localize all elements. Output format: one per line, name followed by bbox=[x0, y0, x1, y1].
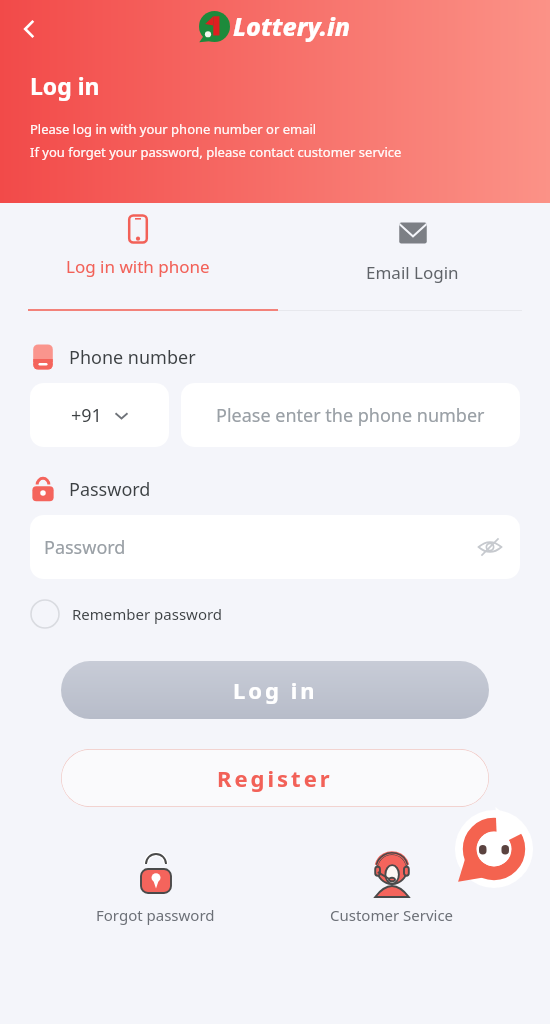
button[interactable]: +91 bbox=[30, 383, 169, 447]
staticText: If you forget your password, please cont… bbox=[30, 143, 402, 161]
button[interactable]: Log in bbox=[61, 661, 489, 719]
staticText: Remember password bbox=[72, 604, 223, 624]
staticText: Phone number bbox=[69, 345, 196, 370]
staticText: Log in bbox=[233, 675, 318, 705]
staticText: Email Login bbox=[366, 261, 459, 284]
staticText: Log in with phone bbox=[66, 255, 210, 278]
button[interactable]: Customer support chat bbox=[455, 810, 533, 888]
button[interactable]: Log in with phone bbox=[0, 203, 275, 315]
button[interactable]: Customer Service bbox=[312, 843, 472, 929]
button[interactable]: Back bbox=[6, 6, 52, 52]
staticText: Password bbox=[44, 535, 126, 560]
staticText: Please log in with your phone number or … bbox=[30, 120, 317, 138]
staticText: Register bbox=[217, 763, 333, 793]
button[interactable]: Forgot password bbox=[78, 843, 233, 929]
button[interactable]: Please enter the phone number bbox=[181, 383, 520, 447]
staticText: Customer Service bbox=[330, 905, 454, 925]
staticText: Forgot password bbox=[96, 905, 215, 925]
button[interactable]: Email Login bbox=[275, 203, 550, 315]
button[interactable]: Remember password bbox=[26, 595, 227, 633]
staticText: Log in bbox=[30, 70, 100, 101]
staticText: Lottery.in bbox=[233, 9, 351, 43]
staticText: +91 bbox=[71, 403, 102, 428]
button[interactable]: Show password bbox=[472, 529, 508, 565]
button[interactable]: Password bbox=[30, 515, 520, 579]
staticText: Please enter the phone number bbox=[216, 403, 485, 428]
button[interactable]: Register bbox=[61, 749, 489, 807]
staticText: Password bbox=[69, 477, 151, 502]
